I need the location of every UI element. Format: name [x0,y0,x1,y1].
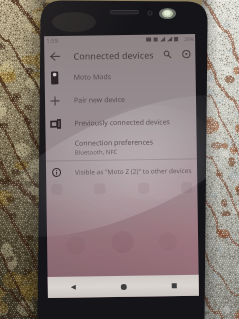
staticText: Moto Mods [74,72,112,83]
button[interactable]: Visible as "Moto Z (2)" to other devices [46,160,197,182]
staticText: 28% [184,36,194,43]
staticText: Connected devices [73,48,154,62]
button[interactable]: Back [48,276,99,298]
staticText: Previously connected devices [74,117,170,129]
staticText: Pair new device [74,95,125,106]
button[interactable]: Navigate up [44,46,66,66]
button[interactable]: Recent apps [149,275,199,297]
staticText: Visible as "Moto Z (2)" to other devices [75,166,192,177]
button[interactable]: Pair new device [45,87,196,112]
staticText: Bluetooth, NFC [75,148,118,157]
button[interactable]: Home [99,276,149,297]
staticText: 1:59 [46,37,58,45]
button[interactable]: Connection preferences [45,133,197,160]
button[interactable]: Search [157,44,176,64]
button[interactable]: Moto Mods [44,64,196,89]
button[interactable]: Previously connected devices [45,110,196,135]
button[interactable]: Help and feedback [176,44,195,64]
staticText: Connection preferences [75,137,154,149]
